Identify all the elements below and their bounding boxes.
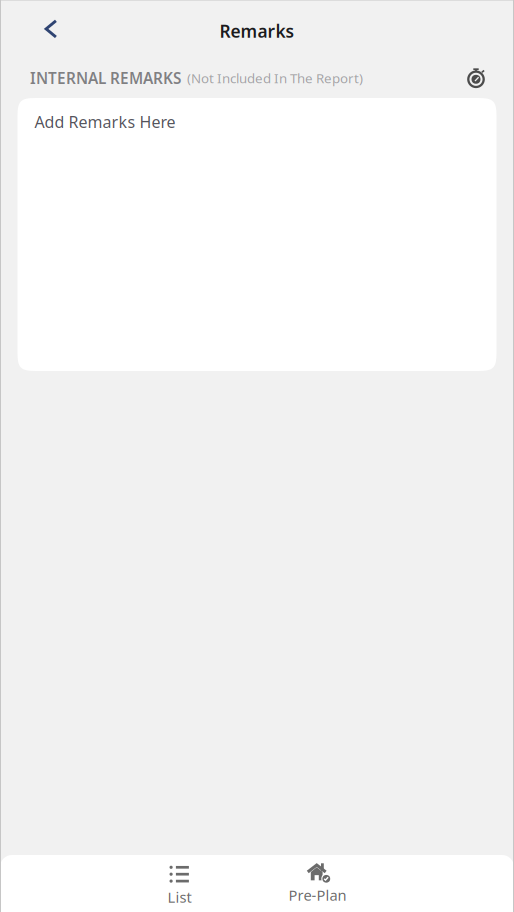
staticText: Add Remarks Here xyxy=(34,111,175,133)
button[interactable]: List xyxy=(112,855,247,912)
staticText: INTERNAL REMARKS xyxy=(30,68,181,88)
button[interactable]: Pre-Plan xyxy=(247,855,388,912)
staticText: List xyxy=(167,887,191,907)
staticText: Pre-Plan xyxy=(288,885,346,905)
button[interactable]: Back xyxy=(28,6,74,56)
button[interactable]: Timer xyxy=(460,62,492,94)
staticText: (Not Included In The Report) xyxy=(181,69,363,87)
staticText: Remarks xyxy=(219,19,294,43)
button[interactable]: Add Remarks Here xyxy=(17,98,496,371)
